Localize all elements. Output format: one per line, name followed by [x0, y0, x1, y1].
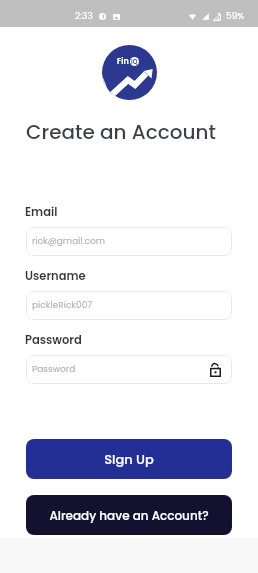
staticText: rick@gmail.com: [32, 235, 106, 248]
button[interactable]: Password: [26, 355, 232, 384]
staticText: Already have an Account?: [49, 507, 209, 524]
staticText: 2:33: [75, 10, 93, 23]
staticText: IQ: [131, 58, 138, 66]
staticText: Email: [25, 204, 58, 220]
staticText: Create an Account: [26, 118, 216, 146]
staticText: Password: [25, 332, 82, 348]
staticText: Username: [25, 268, 86, 284]
button[interactable]: Toggle password visibility: [210, 363, 221, 377]
button[interactable]: Sign Up: [26, 439, 232, 479]
button[interactable]: rick@gmail.com: [26, 227, 232, 256]
button[interactable]: pickleRick007: [26, 291, 232, 320]
staticText: 59%: [226, 10, 245, 23]
staticText: pickleRick007: [32, 299, 93, 312]
staticText: Sign Up: [104, 450, 154, 468]
button[interactable]: FinIQ logo: [102, 45, 157, 100]
staticText: Fin: [117, 56, 129, 67]
button[interactable]: Already have an Account?: [26, 495, 232, 535]
staticText: Password: [32, 363, 76, 376]
